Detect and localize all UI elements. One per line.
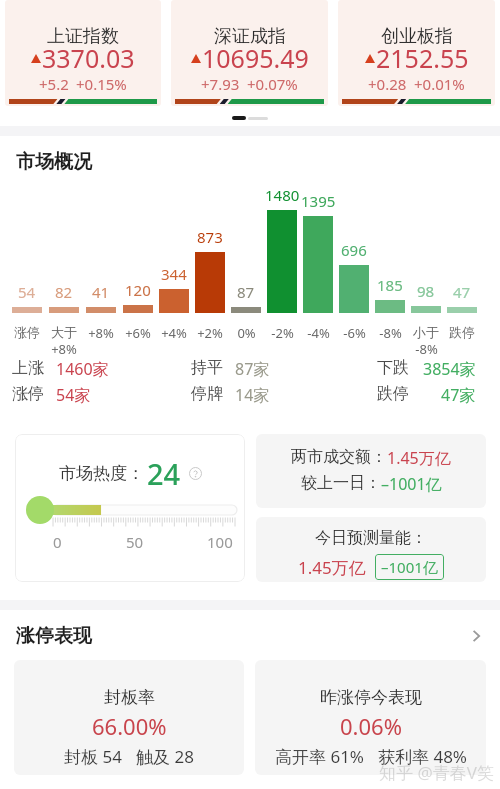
staticText: 87 <box>237 282 255 302</box>
staticText: 涨停 <box>14 324 40 340</box>
staticText: –1001亿 <box>381 473 442 495</box>
staticText: 696 <box>341 240 367 260</box>
staticText: +8% <box>88 324 114 342</box>
staticText: +8% <box>51 340 77 358</box>
button[interactable]: 昨涨停今表现 <box>255 660 486 775</box>
staticText: +4% <box>161 324 187 342</box>
staticText: 3854家 <box>423 358 476 380</box>
staticText: 市场热度： <box>59 463 144 484</box>
staticText: 98 <box>417 281 435 301</box>
staticText: 0.06% <box>340 711 402 741</box>
staticText: +5.2 <box>39 74 69 94</box>
staticText: -2% <box>271 324 294 342</box>
button[interactable]: 市场热度： <box>15 434 245 582</box>
staticText: 100 <box>207 532 233 552</box>
staticText: 120 <box>125 280 151 300</box>
staticText: 大于 <box>51 324 77 340</box>
staticText: 市场概况 <box>16 150 92 174</box>
staticText: 10695.49 <box>202 41 309 75</box>
staticText: 封板 54 <box>64 745 122 768</box>
staticText: 持平 <box>191 358 223 378</box>
staticText: 1395 <box>301 191 336 211</box>
staticText: -8% <box>415 340 438 358</box>
staticText: 24 <box>147 454 181 493</box>
staticText: 创业板指 <box>381 25 453 48</box>
staticText: 344 <box>161 264 187 284</box>
staticText: 1.45万亿 <box>387 447 451 469</box>
staticText: +0.15% <box>76 74 127 94</box>
staticText: 小于 <box>413 324 439 340</box>
staticText: 封板率 <box>104 687 155 708</box>
staticText: 深证成指 <box>214 25 286 48</box>
button[interactable]: 创业板指 <box>338 0 495 106</box>
button[interactable]: 涨停表现 <box>16 624 484 648</box>
staticText: 上涨 <box>12 358 44 378</box>
staticText: +0.01% <box>414 74 465 94</box>
staticText: 54家 <box>56 384 91 406</box>
staticText: 82 <box>55 282 73 302</box>
staticText: 54 <box>18 282 36 302</box>
staticText: 0% <box>237 324 256 342</box>
staticText: 3370.03 <box>42 41 135 75</box>
button[interactable]: 两市成交额： <box>256 434 486 508</box>
staticText: 50 <box>126 532 144 552</box>
staticText: 两市成交额： <box>291 447 387 467</box>
staticText: 涨停 <box>12 384 44 404</box>
staticText: 跌停 <box>449 324 475 340</box>
staticText: 41 <box>92 282 110 302</box>
staticText: +0.28 <box>368 74 407 94</box>
button[interactable]: 今日预测量能： <box>256 517 486 582</box>
staticText: 涨停表现 <box>16 624 92 648</box>
staticText: 66.00% <box>92 711 167 741</box>
staticText: -6% <box>343 324 366 342</box>
staticText: -8% <box>379 324 402 342</box>
button[interactable]: 上证指数 <box>5 0 161 106</box>
staticText: 873 <box>197 227 223 247</box>
staticText: 较上一日： <box>301 473 381 493</box>
staticText: 185 <box>377 275 403 295</box>
staticText: +7.93 <box>201 74 240 94</box>
staticText: 昨涨停今表现 <box>320 687 422 708</box>
staticText: 停牌 <box>191 384 223 404</box>
staticText: 上证指数 <box>47 25 119 48</box>
staticText: 高开率 61% <box>275 745 364 768</box>
staticText: +6% <box>125 324 151 342</box>
staticText: 跌停 <box>377 384 409 404</box>
staticText: 获利率 48% <box>378 745 467 768</box>
staticText: 2152.55 <box>376 41 469 75</box>
staticText: 1.45万亿 <box>298 556 366 579</box>
staticText: 知乎 @青春V笑 <box>379 761 494 784</box>
staticText: 14家 <box>235 384 270 406</box>
staticText: 下跌 <box>377 358 409 378</box>
staticText: 今日预测量能： <box>315 528 427 548</box>
staticText: +2% <box>197 324 223 342</box>
button[interactable]: 深证成指 <box>171 0 328 106</box>
button[interactable]: 封板率 <box>14 660 244 775</box>
staticText: –1001亿 <box>381 557 438 577</box>
staticText: 1460家 <box>56 358 109 380</box>
staticText: 触及 28 <box>136 745 194 768</box>
staticText: -4% <box>307 324 330 342</box>
staticText: +0.07% <box>247 74 298 94</box>
staticText: 0 <box>53 532 62 552</box>
staticText: 1480 <box>265 185 300 205</box>
staticText: 47 <box>453 282 471 302</box>
staticText: 87家 <box>235 358 270 380</box>
other: More <box>468 628 484 644</box>
staticText: 47家 <box>441 384 476 406</box>
